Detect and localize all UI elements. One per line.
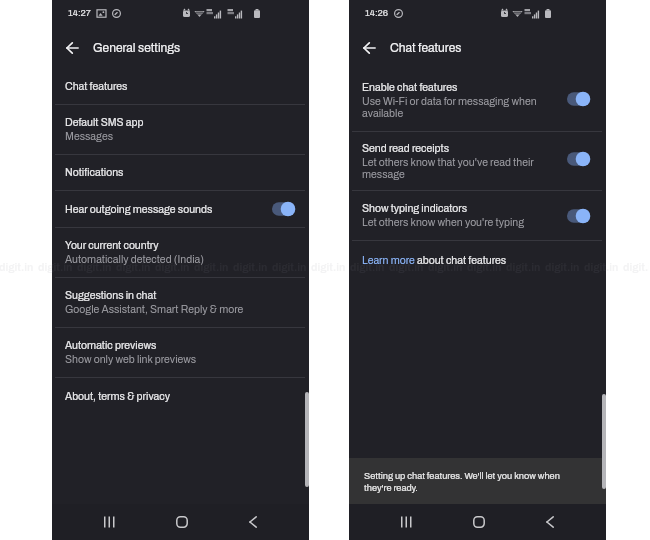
staticText: General settings (93, 41, 181, 54)
staticText: digit.in (545, 262, 580, 273)
staticText: Automatic previews (65, 340, 157, 351)
staticText: digit.in (389, 262, 424, 273)
staticText: Hear outgoing message sounds (65, 204, 213, 215)
staticText: Suggestions in chat (65, 290, 157, 301)
staticText: Send read receipts (362, 143, 450, 154)
button[interactable]: Show typing indicators (349, 191, 606, 240)
button[interactable]: About, terms & privacy (52, 378, 309, 414)
staticText: Your current country (65, 240, 159, 251)
staticText: available (362, 108, 404, 119)
staticText: Chat features (390, 41, 462, 54)
staticText: 14:26 (365, 8, 389, 18)
staticText: Google Assistant, Smart Reply & more (65, 304, 244, 315)
staticText: About, terms & privacy (65, 391, 171, 402)
staticText: digit.in (311, 262, 346, 273)
button[interactable]: Back (240, 509, 266, 535)
staticText: digit.in (467, 262, 502, 273)
staticText: Let others know that you've read their (362, 157, 534, 168)
staticText: Setting up chat features. We'll let you … (364, 471, 560, 493)
button[interactable]: Back (537, 509, 563, 535)
staticText: Notifications (65, 167, 124, 178)
button[interactable]: Suggestions in chat (52, 278, 309, 327)
staticText: Show only web link previews (65, 354, 197, 365)
button[interactable]: Recent apps (96, 509, 122, 535)
button[interactable]: Recent apps (393, 509, 419, 535)
button[interactable]: Home (466, 509, 492, 535)
staticText: digit.in (428, 262, 463, 273)
staticText: digit.in (233, 262, 268, 273)
button[interactable]: Navigate up (61, 36, 84, 59)
button[interactable]: Notifications (52, 155, 309, 190)
button[interactable]: Toggle setting (565, 90, 591, 108)
staticText: digit.in (194, 262, 229, 273)
button[interactable]: Toggle setting (565, 150, 591, 168)
staticText: Show typing indicators (362, 203, 468, 214)
staticText: digit.in (116, 262, 151, 273)
button[interactable]: Toggle setting (565, 207, 591, 225)
staticText: Default SMS app (65, 117, 144, 128)
button[interactable]: Toggle setting (270, 200, 296, 218)
staticText: Let others know when you're typing (362, 217, 525, 228)
staticText: digit.in (155, 262, 190, 273)
staticText: digit.in (584, 262, 619, 273)
staticText: digit.in (506, 262, 541, 273)
staticText: digit.in (623, 262, 649, 273)
button[interactable]: Hear outgoing message sounds (52, 191, 309, 227)
staticText: digit.in (350, 262, 385, 273)
staticText: Automatically detected (India) (65, 254, 204, 265)
button[interactable]: Your current country (52, 228, 309, 277)
staticText: Chat features (65, 81, 128, 92)
staticText: Use Wi-Fi or data for messaging when (362, 96, 537, 107)
button[interactable]: Learn more about chat features (349, 241, 606, 279)
staticText: Learn more about chat features (362, 255, 507, 266)
staticText: 14:27 (68, 8, 91, 18)
button[interactable]: Navigate up (358, 36, 381, 59)
button[interactable]: Enable chat features (349, 70, 606, 131)
staticText: digit.in (77, 262, 112, 273)
button[interactable]: Default SMS app (52, 105, 309, 154)
button[interactable]: Home (169, 509, 195, 535)
staticText: Enable chat features (362, 82, 458, 93)
staticText: Messages (65, 131, 114, 142)
staticText: digit.in (0, 262, 34, 273)
button[interactable]: Send read receipts (349, 132, 606, 190)
staticText: digit.in (38, 262, 73, 273)
staticText: message (362, 169, 405, 180)
button[interactable]: Automatic previews (52, 328, 309, 377)
staticText: digit.in (272, 262, 307, 273)
